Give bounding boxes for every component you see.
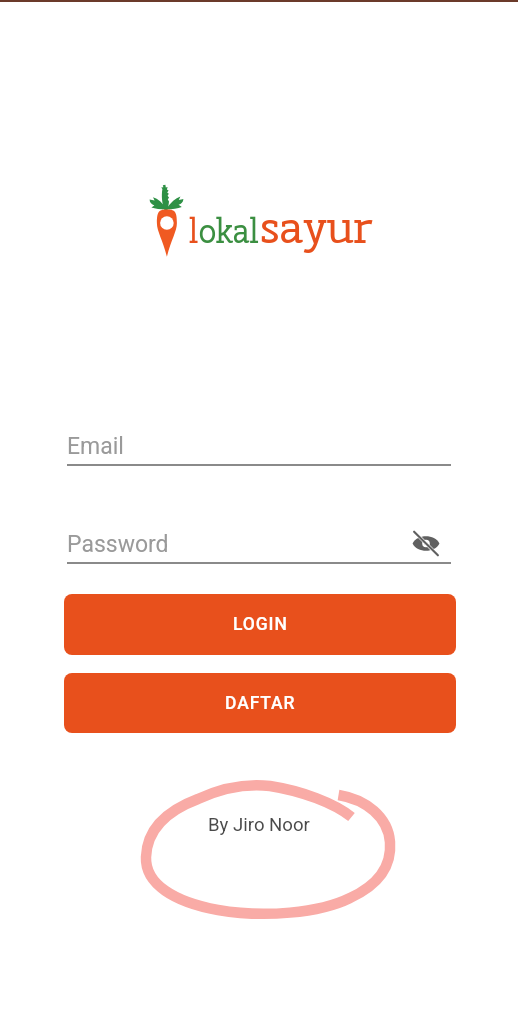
staticText: LOGIN [233,614,288,635]
button[interactable]: Email [67,433,451,466]
button[interactable]: DAFTAR [64,673,456,733]
staticText: DAFTAR [225,693,296,714]
staticText: l [189,206,199,254]
staticText: Password [67,531,169,558]
staticText: By Jiro Noor [208,814,310,836]
button[interactable]: LOGIN [64,594,456,655]
staticText: Email [67,433,124,460]
staticText: sayur [260,198,373,256]
button[interactable]: Show password [406,523,446,563]
button[interactable]: Password [67,531,451,564]
staticText: okal [199,206,259,254]
